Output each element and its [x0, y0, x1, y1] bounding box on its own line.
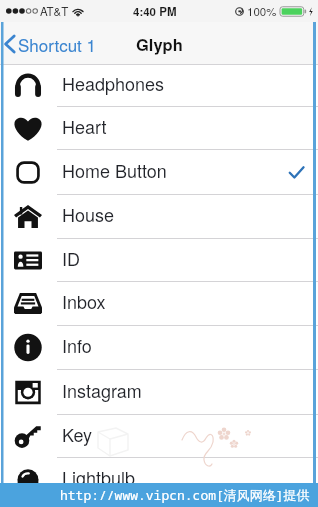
staticText: ID: [62, 245, 80, 271]
staticText: Shortcut 1: [18, 32, 96, 56]
button[interactable]: Info: [0, 326, 318, 370]
button[interactable]: House: [0, 195, 318, 239]
staticText: AT&T: [40, 3, 69, 19]
staticText: Instagram: [62, 377, 142, 403]
button[interactable]: Home Button: [0, 150, 318, 195]
staticText: House: [62, 201, 115, 227]
button[interactable]: Instagram: [0, 370, 318, 415]
button[interactable]: Shortcut 1: [0, 27, 102, 61]
staticText: Glyph: [136, 32, 183, 56]
button[interactable]: Heart: [0, 107, 318, 150]
button[interactable]: Headphones: [0, 65, 318, 107]
staticText: 100%: [247, 3, 277, 19]
staticText: Heart: [62, 113, 107, 139]
button[interactable]: Lightbulb: [0, 458, 318, 502]
staticText: Key: [62, 421, 93, 447]
button[interactable]: Key: [0, 415, 318, 458]
button[interactable]: Inbox: [0, 282, 318, 326]
staticText: http://www.vipcn.com[清风网络]提供: [60, 486, 310, 504]
staticText: Home Button: [62, 157, 167, 183]
staticText: Headphones: [62, 70, 165, 96]
button[interactable]: ID: [0, 239, 318, 282]
staticText: Lightbulb: [62, 464, 136, 490]
staticText: 4:40 PM: [133, 3, 177, 19]
staticText: Info: [62, 332, 92, 358]
staticText: Inbox: [62, 288, 106, 314]
